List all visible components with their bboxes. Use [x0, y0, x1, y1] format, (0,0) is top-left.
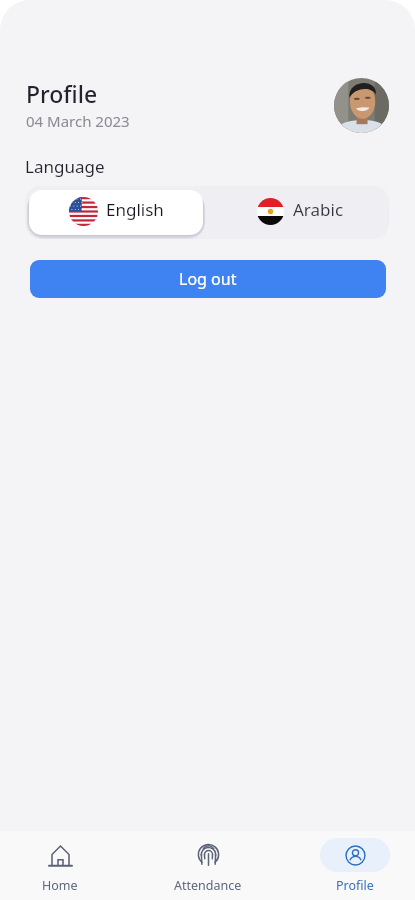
button[interactable]: Arabic: [207, 186, 389, 239]
staticText: Profile: [26, 78, 98, 109]
staticText: Arabic: [293, 198, 344, 221]
button[interactable]: Profile photo: [334, 78, 389, 133]
button[interactable]: Profile: [320, 838, 390, 894]
staticText: Language: [25, 155, 105, 178]
staticText: Log out: [179, 268, 237, 290]
staticText: Attendance: [174, 877, 242, 894]
button[interactable]: Home: [25, 838, 95, 894]
button[interactable]: English: [29, 190, 203, 235]
staticText: Profile: [336, 877, 374, 894]
staticText: English: [106, 198, 164, 221]
button[interactable]: Log out: [30, 260, 386, 298]
button[interactable]: Attendance: [173, 838, 243, 894]
staticText: 04 March 2023: [26, 111, 130, 131]
staticText: Home: [42, 877, 78, 894]
